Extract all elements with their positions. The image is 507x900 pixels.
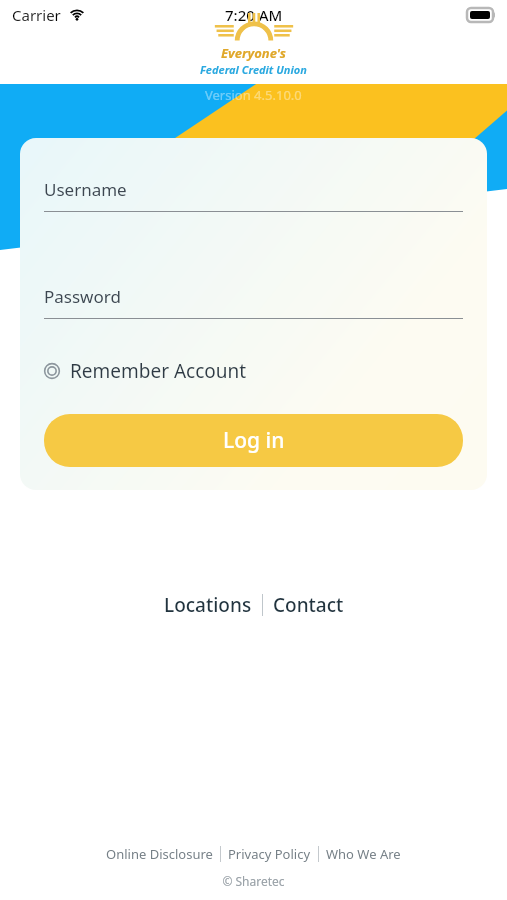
button[interactable]: Password (44, 285, 463, 319)
staticText: © Sharetec (222, 873, 285, 889)
button[interactable]: Online Disclosure (99, 842, 220, 866)
staticText: Everyone's (221, 44, 286, 62)
staticText: Username (44, 178, 127, 201)
staticText: Version 4.5.10.0 (205, 86, 302, 104)
button[interactable]: Log in (44, 414, 463, 467)
staticText: Remember Account (70, 358, 247, 384)
button[interactable]: Username (44, 178, 463, 212)
button[interactable]: Remember Account (44, 354, 247, 388)
staticText: Log in (223, 426, 285, 455)
button[interactable]: Locations (154, 586, 262, 624)
staticText: Password (44, 285, 121, 308)
staticText: Carrier (12, 5, 61, 25)
button[interactable]: Privacy Policy (221, 842, 318, 866)
staticText: 7:20 AM (225, 5, 283, 25)
button[interactable]: Who We Are (319, 842, 408, 866)
button[interactable]: Contact (263, 586, 354, 624)
staticText: Federal Credit Union (200, 62, 307, 77)
